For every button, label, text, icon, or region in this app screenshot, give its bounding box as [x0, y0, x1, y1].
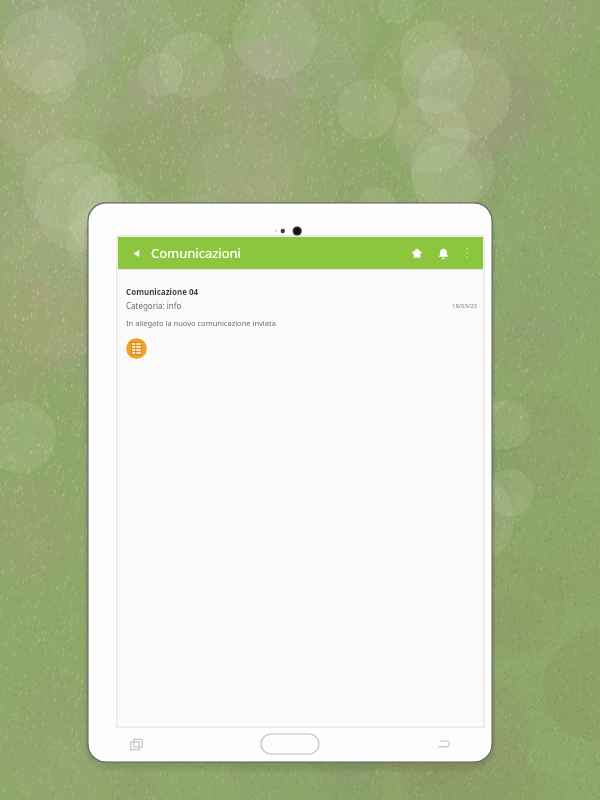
button[interactable]: Back [430, 730, 458, 758]
staticText: Comunicazioni [151, 244, 241, 262]
button[interactable]: Home [404, 240, 430, 266]
button[interactable]: Recent apps [122, 730, 150, 758]
button[interactable]: Back [125, 242, 147, 264]
button[interactable]: More options [456, 242, 478, 264]
button[interactable]: Home [261, 734, 319, 754]
button[interactable]: Open attachment [126, 338, 147, 359]
staticText: Comunicazione 04 [126, 286, 199, 297]
staticText: Categoria: info [126, 300, 182, 311]
staticText: 18/03/23 [451, 302, 477, 310]
staticText: In allegato la nuovo comunicazione invia… [126, 318, 276, 328]
button[interactable]: Notifications [430, 240, 456, 266]
button[interactable]: Comunicazione 04 [118, 270, 483, 359]
